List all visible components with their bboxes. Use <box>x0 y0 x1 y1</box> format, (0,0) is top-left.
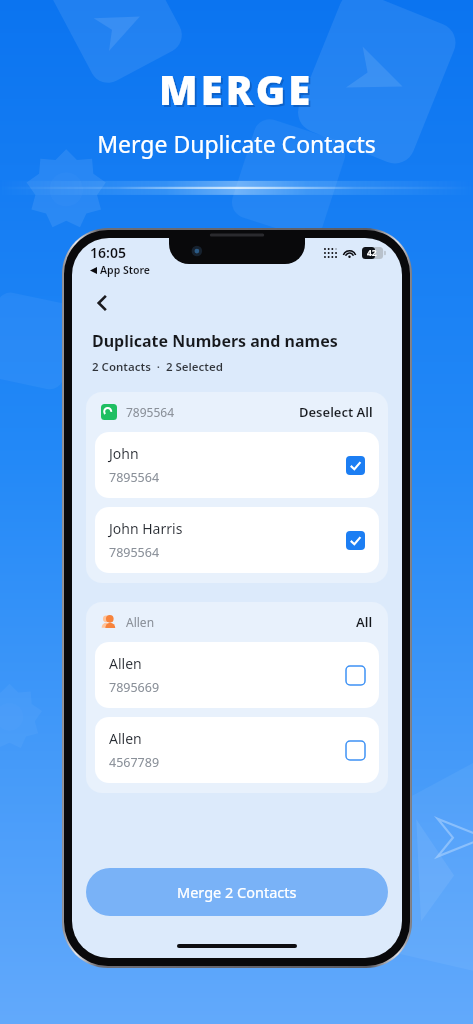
button[interactable]: Merge 2 Contacts <box>86 868 388 916</box>
staticText: Allen <box>109 654 142 673</box>
staticText: Allen <box>109 729 142 748</box>
staticText: John Harris <box>109 519 183 538</box>
staticText: App Store <box>100 263 150 277</box>
staticText: Merge Duplicate Contacts <box>97 128 376 159</box>
staticText: Merge 2 Contacts <box>177 882 297 902</box>
button[interactable]: John <box>95 432 379 498</box>
staticText: Allen <box>126 614 155 630</box>
staticText: 7895564 <box>109 469 160 486</box>
button[interactable]: Back <box>86 286 120 320</box>
staticText: 16:05 <box>90 243 126 262</box>
staticText: 42 <box>367 247 377 259</box>
button[interactable]: Allen <box>95 717 379 783</box>
button[interactable]: John Harris <box>95 507 379 573</box>
staticText: Deselect All <box>299 403 373 421</box>
staticText: 2 Contacts · 2 Selected <box>92 359 223 375</box>
button[interactable]: Deselect All <box>299 403 373 421</box>
button[interactable]: Not selected <box>346 666 365 685</box>
button[interactable]: Not selected <box>346 741 365 760</box>
staticText: MERGE <box>159 62 314 116</box>
staticText: Duplicate Numbers and names <box>92 330 338 352</box>
staticText: 7895564 <box>109 544 160 561</box>
button[interactable]: Selected <box>346 531 365 550</box>
button[interactable]: All <box>356 613 373 631</box>
staticText: MERGE <box>161 64 316 118</box>
staticText: 4567789 <box>109 754 160 771</box>
button[interactable]: Allen <box>95 642 379 708</box>
button[interactable]: Selected <box>346 456 365 475</box>
staticText: John <box>109 444 139 463</box>
staticText: 7895669 <box>109 679 160 696</box>
staticText: All <box>356 613 373 631</box>
staticText: 7895564 <box>126 404 175 420</box>
